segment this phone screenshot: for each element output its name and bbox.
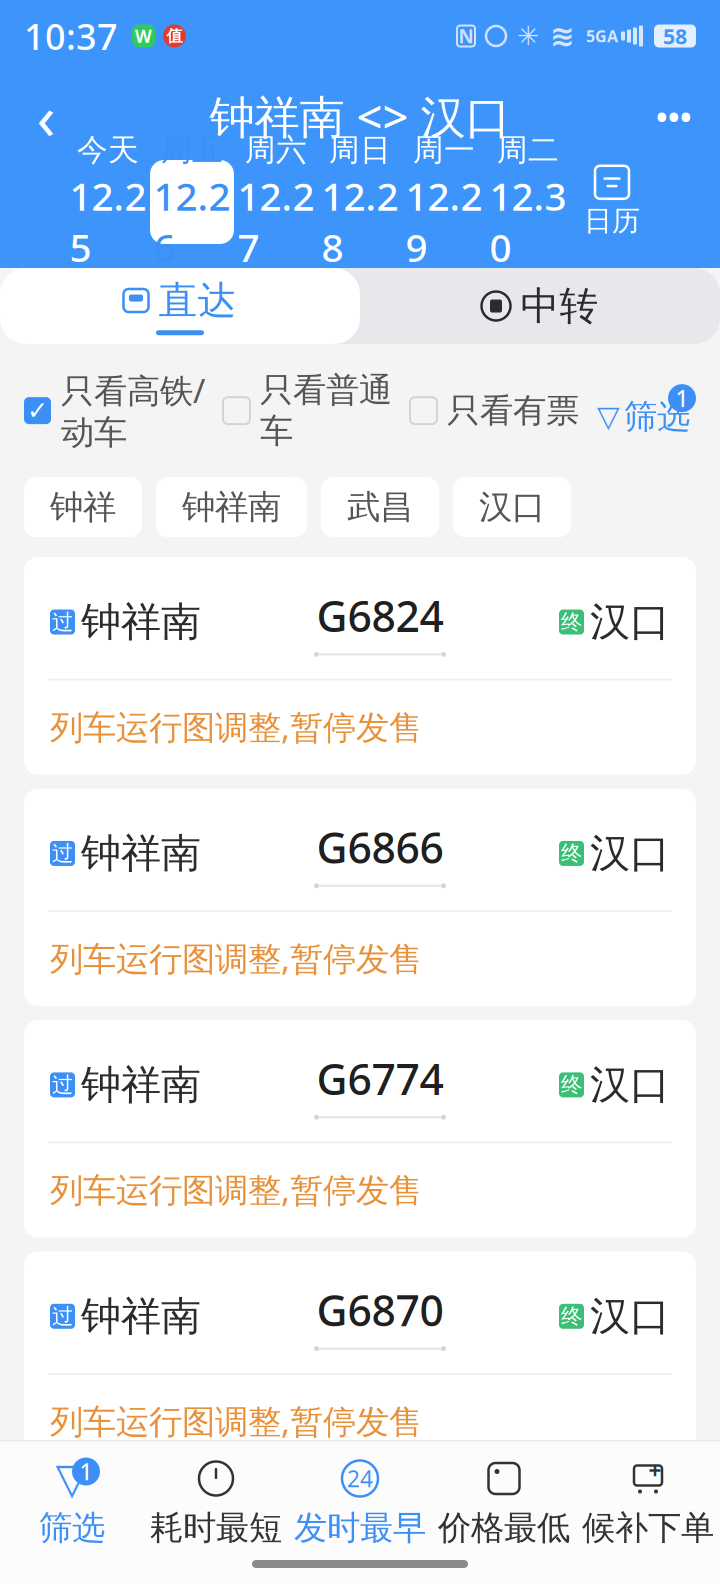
staticText: ▽ (55, 1454, 88, 1503)
button[interactable]: 返回 (12, 82, 80, 150)
staticText: 汉口 (590, 597, 670, 647)
staticText: G6774 (316, 1050, 443, 1107)
staticText: 终 (561, 1303, 582, 1329)
staticText: 候补下单 (582, 1507, 714, 1548)
staticText: G6870 (316, 1281, 443, 1338)
button[interactable]: 钟祥 (24, 477, 142, 537)
staticText: 周二 (497, 131, 559, 169)
staticText: 1 (675, 383, 688, 413)
button[interactable]: 更多 (640, 82, 708, 150)
staticText: 钟祥 (50, 487, 116, 528)
button[interactable]: 过 (24, 789, 696, 1006)
staticText: 武昌 (347, 487, 413, 528)
staticText: 中转 (520, 282, 598, 330)
staticText: 过 (52, 1072, 73, 1098)
button[interactable]: 周二 (486, 160, 570, 244)
button[interactable]: 周六 (234, 160, 318, 244)
staticText: 周六 (245, 131, 307, 169)
staticText: N (458, 24, 473, 48)
button[interactable]: + (576, 1457, 720, 1548)
button[interactable]: 汉口 (453, 477, 571, 537)
staticText: 12.30 (489, 170, 566, 273)
staticText: ‹ (36, 75, 55, 157)
staticText: 只看普通车 (260, 370, 392, 452)
staticText: + (648, 1455, 661, 1485)
staticText: 12.25 (69, 170, 146, 273)
staticText: 钟祥南 (81, 1060, 201, 1109)
staticText: 12.27 (237, 170, 314, 273)
button[interactable]: 周五 (150, 160, 234, 244)
staticText: 值 (166, 26, 182, 46)
staticText: ▽ (597, 400, 620, 433)
button[interactable]: 过 (24, 557, 696, 775)
staticText: 12.29 (405, 170, 482, 273)
staticText: 钟祥南 (81, 1292, 201, 1341)
staticText: 耗时最短 (150, 1507, 282, 1548)
staticText: G6866 (316, 819, 443, 875)
staticText: ✓ (27, 396, 48, 425)
staticText: 列车运行图调整,暂停发售 (50, 1399, 422, 1443)
staticText: 终 (561, 609, 582, 635)
staticText: 价格最低 (438, 1507, 570, 1548)
button[interactable]: 周一 (402, 160, 486, 244)
staticText: ••• (656, 96, 692, 136)
staticText: 周日 (329, 131, 391, 169)
button[interactable]: 周日 (318, 160, 402, 244)
staticText: 58 (663, 22, 687, 50)
button[interactable]: 过 (24, 1251, 696, 1469)
staticText: 只看高铁/动车 (61, 368, 205, 453)
button[interactable]: ▽ (0, 1457, 144, 1548)
button[interactable]: 只看有票 (410, 390, 579, 431)
staticText: 钟祥南 <> 汉口 (209, 86, 510, 146)
staticText: 5GA (586, 25, 618, 47)
staticText: 汉口 (590, 829, 670, 878)
staticText: 今天 (77, 131, 139, 169)
button[interactable]: 只看普通车 (223, 370, 392, 452)
staticText: ✳ (517, 21, 539, 51)
button[interactable]: 日历 (570, 160, 654, 244)
staticText: 钟祥南 (81, 597, 201, 647)
button[interactable]: ✓ (24, 368, 205, 453)
staticText: 汉口 (590, 1060, 670, 1109)
staticText: G6824 (316, 587, 443, 644)
button[interactable]: 24 (288, 1457, 432, 1548)
staticText: 列车运行图调整,暂停发售 (50, 936, 422, 980)
staticText: 只看有票 (447, 390, 579, 431)
staticText: 周五 (161, 131, 223, 169)
staticText: 汉口 (479, 487, 545, 528)
staticText: 钟祥南 (182, 487, 281, 528)
staticText: 日历 (584, 204, 640, 238)
button[interactable]: 直达 (0, 268, 360, 344)
staticText: 筛选 (624, 396, 690, 437)
staticText: 终 (561, 1072, 582, 1098)
button[interactable]: 过 (24, 1020, 696, 1237)
staticText: 发时最早 (294, 1507, 426, 1548)
staticText: 1 (79, 1456, 92, 1486)
button[interactable]: ▽ (597, 384, 696, 437)
staticText: 周一 (413, 131, 475, 169)
button[interactable]: 今天 (66, 160, 150, 244)
button[interactable]: 耗时最短 (144, 1457, 288, 1548)
staticText: 直达 (158, 277, 236, 324)
staticText: 钟祥南 (81, 829, 201, 878)
staticText: 过 (52, 840, 73, 867)
staticText: 温馨提示： (50, 1515, 235, 1561)
button[interactable]: 中转 (360, 268, 720, 344)
button[interactable]: 钟祥南 (156, 477, 307, 537)
staticText: 过 (52, 609, 73, 635)
staticText: 10:37 (24, 12, 118, 60)
staticText: 24 (347, 1463, 373, 1493)
staticText: 列车运行图调整,暂停发售 (50, 1167, 422, 1211)
staticText: 12.28 (321, 170, 398, 273)
button[interactable]: 武昌 (321, 477, 439, 537)
staticText: 汉口 (590, 1292, 670, 1341)
staticText: W (135, 24, 152, 47)
staticText: 12.26 (153, 170, 230, 273)
staticText: 终 (561, 840, 582, 867)
staticText: 筛选 (39, 1507, 105, 1548)
staticText: 过 (52, 1303, 73, 1329)
staticText: ≋ (550, 19, 575, 53)
staticText: 列车运行图调整,暂停发售 (50, 704, 422, 749)
button[interactable]: 价格最低 (432, 1457, 576, 1548)
